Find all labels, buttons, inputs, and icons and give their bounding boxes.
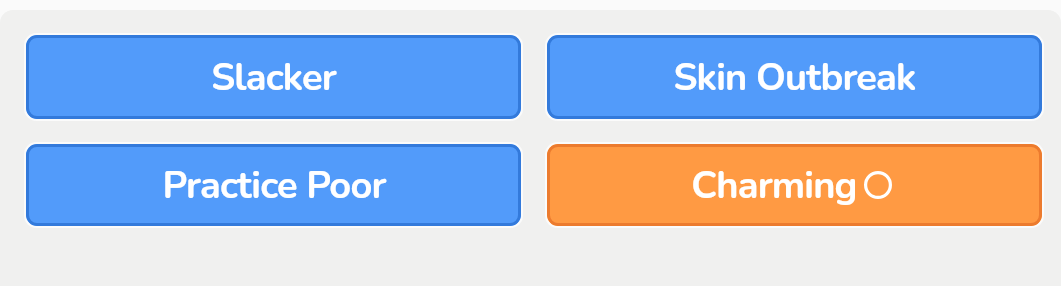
button[interactable]: Slacker (26, 35, 521, 119)
button[interactable]: Skin Outbreak (547, 35, 1042, 119)
staticText: Practice Poor (162, 160, 386, 212)
staticText: Slacker (211, 52, 336, 104)
button[interactable]: Charming (547, 144, 1042, 226)
staticText: Skin Outbreak (673, 52, 916, 104)
button[interactable]: Practice Poor (26, 144, 521, 226)
staticText: Charming (691, 160, 857, 212)
other: Selected indicator (864, 171, 892, 199)
